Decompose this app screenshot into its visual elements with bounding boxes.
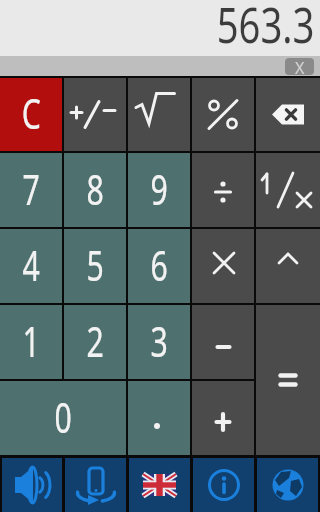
button[interactable]: X bbox=[285, 58, 314, 75]
button[interactable] bbox=[256, 153, 320, 227]
button[interactable]: 9 bbox=[128, 153, 190, 227]
staticText: X bbox=[295, 58, 305, 74]
staticText: 9 bbox=[150, 159, 168, 216]
staticText: 3 bbox=[150, 311, 168, 368]
button[interactable] bbox=[64, 78, 126, 151]
staticText: 7 bbox=[22, 159, 40, 216]
staticText: 5 bbox=[86, 235, 104, 292]
button[interactable] bbox=[2, 458, 62, 512]
staticText: C bbox=[22, 83, 41, 140]
button[interactable] bbox=[193, 458, 254, 512]
button[interactable] bbox=[192, 78, 254, 151]
staticText: 0 bbox=[54, 387, 72, 444]
button[interactable] bbox=[256, 229, 320, 303]
staticText: 2 bbox=[86, 311, 104, 368]
button[interactable] bbox=[192, 305, 254, 379]
button[interactable]: 4 bbox=[0, 229, 62, 303]
button[interactable]: 8 bbox=[64, 153, 126, 227]
button[interactable]: 6 bbox=[128, 229, 190, 303]
button[interactable] bbox=[129, 458, 190, 512]
button[interactable] bbox=[128, 78, 190, 151]
staticText: 8 bbox=[86, 159, 104, 216]
staticText: 1 bbox=[22, 311, 40, 368]
button[interactable]: 1 bbox=[0, 305, 62, 379]
staticText: 563.3 bbox=[217, 0, 315, 55]
button[interactable]: C bbox=[0, 78, 62, 151]
button[interactable] bbox=[192, 153, 254, 227]
button[interactable] bbox=[256, 78, 320, 151]
button[interactable] bbox=[192, 381, 254, 455]
button[interactable]: 0 bbox=[0, 381, 126, 455]
button[interactable]: 5 bbox=[64, 229, 126, 303]
button[interactable] bbox=[128, 381, 190, 455]
staticText: 4 bbox=[22, 235, 40, 292]
button[interactable] bbox=[256, 305, 320, 455]
button[interactable] bbox=[192, 229, 254, 303]
staticText: 6 bbox=[150, 235, 168, 292]
button[interactable]: 3 bbox=[128, 305, 190, 379]
button[interactable]: 2 bbox=[64, 305, 126, 379]
button[interactable]: 7 bbox=[0, 153, 62, 227]
button[interactable] bbox=[257, 458, 318, 512]
button[interactable] bbox=[65, 458, 126, 512]
